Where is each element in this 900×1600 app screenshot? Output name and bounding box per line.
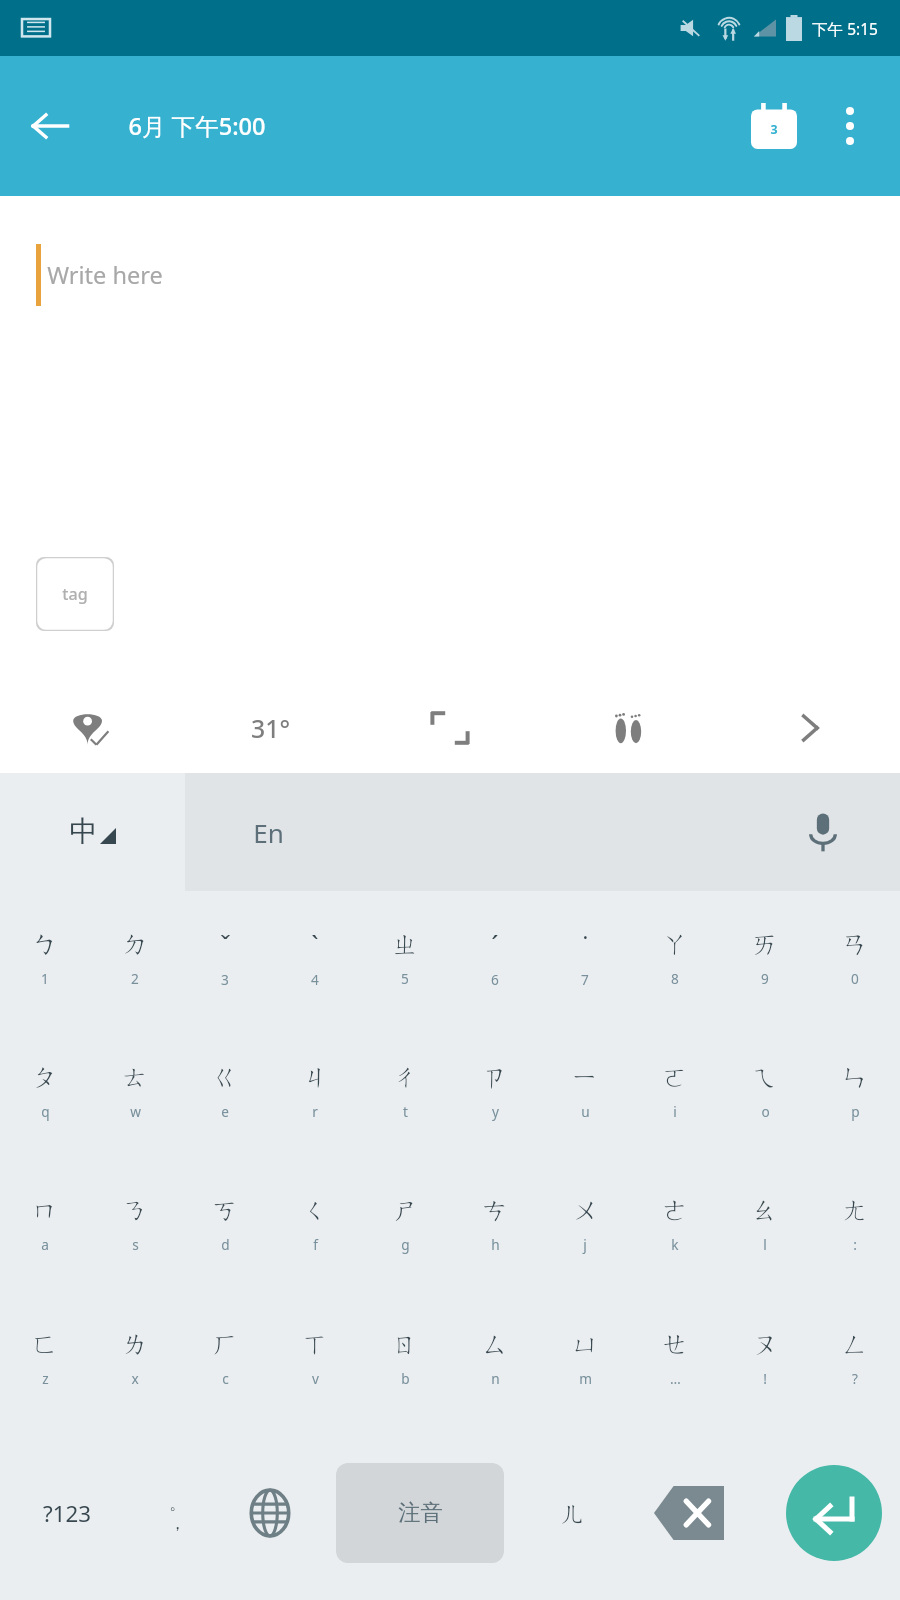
- button[interactable]: 注音: [336, 1463, 504, 1563]
- staticText: w: [130, 1102, 141, 1121]
- button[interactable]: ㄣ: [810, 1024, 900, 1157]
- button[interactable]: Change language: [222, 1458, 317, 1568]
- button[interactable]: ㄖ: [360, 1291, 450, 1425]
- button[interactable]: ㄅ: [0, 891, 90, 1024]
- button[interactable]: ㄢ: [810, 891, 900, 1024]
- staticText: l: [763, 1235, 767, 1254]
- staticText: p: [851, 1102, 860, 1121]
- button[interactable]: Backspace: [636, 1458, 741, 1568]
- button[interactable]: ㄔ: [360, 1024, 450, 1157]
- button[interactable]: ㄦ: [525, 1458, 620, 1568]
- button[interactable]: Steps: [540, 683, 720, 773]
- staticText: tag: [62, 583, 88, 605]
- button[interactable]: Crop: [360, 683, 540, 773]
- button[interactable]: Location: [0, 683, 180, 773]
- staticText: ㄊ: [122, 1061, 149, 1094]
- button[interactable]: Enter: [786, 1465, 882, 1561]
- staticText: u: [581, 1102, 590, 1121]
- button[interactable]: ㄧ: [540, 1024, 630, 1157]
- staticText: ㄕ: [392, 1194, 419, 1227]
- staticText: 注音: [398, 1499, 443, 1527]
- button[interactable]: ㄈ: [0, 1291, 90, 1425]
- staticText: f: [313, 1235, 318, 1254]
- staticText: 下午 5:15: [812, 18, 878, 39]
- button[interactable]: ㄛ: [630, 1024, 720, 1157]
- button[interactable]: ㄌ: [90, 1291, 180, 1425]
- staticText: ㄣ: [842, 1061, 869, 1094]
- staticText: ㄌ: [122, 1328, 149, 1361]
- button[interactable]: ㄆ: [0, 1024, 90, 1157]
- button[interactable]: ˙: [540, 891, 630, 1024]
- staticText: ˇ: [220, 927, 231, 962]
- staticText: ，: [169, 1513, 186, 1533]
- button[interactable]: Next: [720, 683, 900, 773]
- button[interactable]: ㄨ: [540, 1157, 630, 1291]
- button[interactable]: ㄗ: [450, 1024, 540, 1157]
- staticText: y: [492, 1102, 499, 1121]
- staticText: e: [221, 1102, 229, 1121]
- button[interactable]: ㄟ: [720, 1024, 810, 1157]
- staticText: ㄟ: [752, 1061, 779, 1094]
- button[interactable]: ㄚ: [630, 891, 720, 1024]
- staticText: ㄒ: [302, 1328, 329, 1361]
- staticText: ㄨ: [572, 1194, 599, 1227]
- button[interactable]: Calendar: [736, 88, 812, 164]
- button[interactable]: ㄝ: [630, 1291, 720, 1425]
- button[interactable]: ㄠ: [720, 1157, 810, 1291]
- button[interactable]: ㄩ: [540, 1291, 630, 1425]
- staticText: !: [763, 1369, 767, 1388]
- button[interactable]: ˇ: [180, 891, 270, 1024]
- staticText: 6: [491, 970, 499, 989]
- staticText: c: [222, 1369, 229, 1388]
- staticText: r: [312, 1102, 318, 1121]
- staticText: ㄉ: [122, 928, 149, 961]
- button[interactable]: 中: [0, 773, 185, 891]
- button[interactable]: ㄙ: [450, 1291, 540, 1425]
- button[interactable]: ㄕ: [360, 1157, 450, 1291]
- button[interactable]: ㄊ: [90, 1024, 180, 1157]
- staticText: ㄇ: [32, 1194, 59, 1227]
- button[interactable]: tag: [36, 557, 114, 631]
- staticText: En: [253, 815, 284, 850]
- button[interactable]: ㄏ: [180, 1291, 270, 1425]
- button[interactable]: More options: [812, 88, 888, 164]
- button[interactable]: Temperature: [180, 683, 360, 773]
- staticText: ㄛ: [662, 1061, 689, 1094]
- button[interactable]: ㄎ: [180, 1157, 270, 1291]
- button[interactable]: ㄑ: [270, 1157, 360, 1291]
- button[interactable]: ㄤ: [810, 1157, 900, 1291]
- button[interactable]: ˋ: [270, 891, 360, 1024]
- button[interactable]: Back: [22, 98, 78, 154]
- staticText: ˙: [583, 927, 588, 962]
- button[interactable]: ㄜ: [630, 1157, 720, 1291]
- button[interactable]: ㄐ: [270, 1024, 360, 1157]
- button[interactable]: ㄘ: [450, 1157, 540, 1291]
- button[interactable]: 。: [130, 1458, 225, 1568]
- staticText: ㄧ: [572, 1061, 599, 1094]
- staticText: 9: [761, 969, 769, 988]
- button[interactable]: ㄡ: [720, 1291, 810, 1425]
- staticText: ㄆ: [32, 1061, 59, 1094]
- button[interactable]: ㄞ: [720, 891, 810, 1024]
- button[interactable]: ㄥ: [810, 1291, 900, 1425]
- staticText: 1: [41, 969, 49, 988]
- button[interactable]: En: [185, 773, 900, 891]
- button[interactable]: ㄇ: [0, 1157, 90, 1291]
- button[interactable]: ㄓ: [360, 891, 450, 1024]
- button[interactable]: ㄒ: [270, 1291, 360, 1425]
- staticText: ㄞ: [752, 928, 779, 961]
- button[interactable]: ㄍ: [180, 1024, 270, 1157]
- staticText: ?: [852, 1369, 858, 1388]
- staticText: s: [132, 1235, 139, 1254]
- button[interactable]: ˊ: [450, 891, 540, 1024]
- button[interactable]: ㄉ: [90, 891, 180, 1024]
- staticText: ˊ: [491, 927, 499, 962]
- staticText: a: [41, 1235, 49, 1254]
- staticText: :: [853, 1235, 857, 1254]
- button[interactable]: Voice input: [796, 805, 850, 859]
- staticText: 3: [221, 970, 229, 989]
- staticText: g: [401, 1235, 410, 1254]
- staticText: ㄑ: [302, 1194, 329, 1227]
- button[interactable]: ㄋ: [90, 1157, 180, 1291]
- button[interactable]: ?123: [8, 1458, 126, 1568]
